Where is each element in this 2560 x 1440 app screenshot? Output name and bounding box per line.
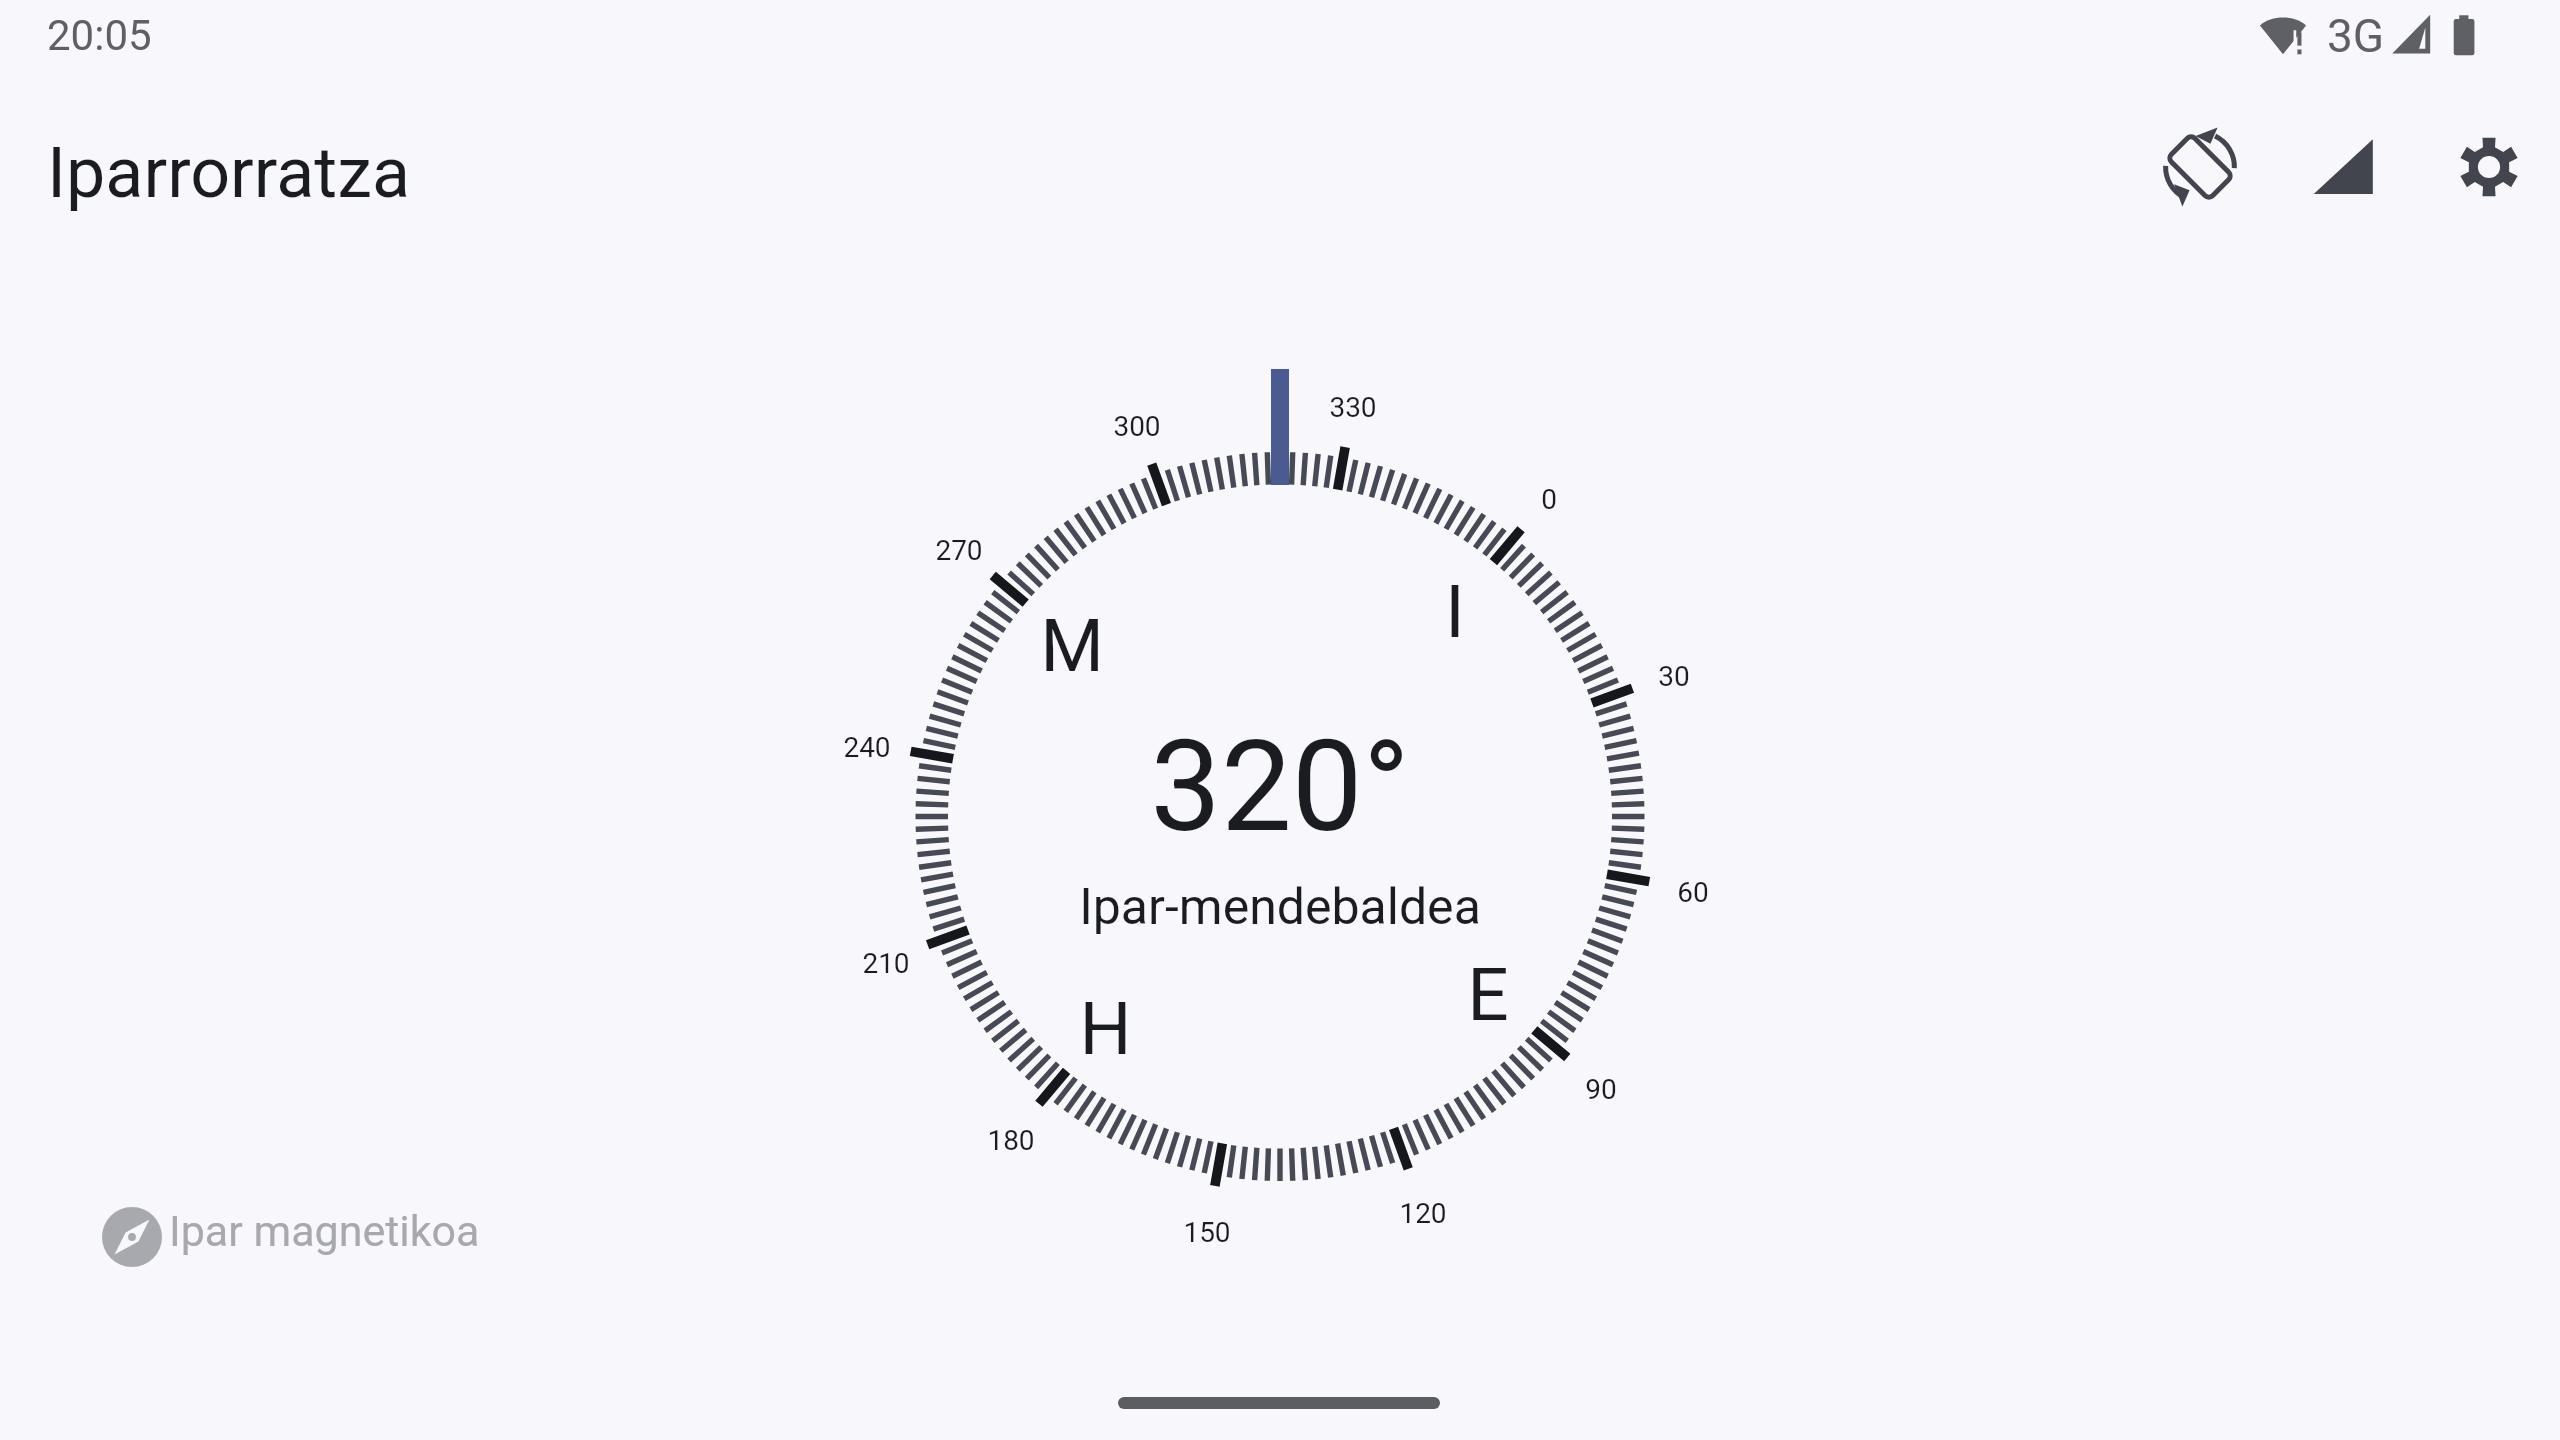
staticText: E bbox=[1467, 952, 1509, 1038]
staticText: 120 bbox=[1399, 1197, 1447, 1230]
staticText: 320° bbox=[1150, 713, 1410, 861]
staticText: 90 bbox=[1585, 1073, 1617, 1106]
staticText: 300 bbox=[1113, 410, 1161, 443]
staticText: H bbox=[1079, 986, 1132, 1072]
button[interactable]: Settings bbox=[2429, 107, 2549, 227]
staticText: 60 bbox=[1677, 876, 1709, 909]
staticText: I bbox=[1445, 569, 1465, 655]
staticText: 270 bbox=[935, 534, 983, 567]
staticText: 30 bbox=[1658, 660, 1690, 693]
other: Battery bbox=[2439, 13, 2485, 59]
other: Wi-Fi bbox=[2259, 13, 2307, 61]
staticText: 180 bbox=[987, 1124, 1035, 1157]
staticText: 0 bbox=[1541, 483, 1557, 516]
staticText: 20:05 bbox=[47, 11, 152, 60]
staticText: 3G bbox=[2327, 9, 2385, 63]
staticText: 240 bbox=[843, 731, 891, 764]
staticText: 150 bbox=[1183, 1216, 1231, 1249]
staticText: Ipar-mendebaldea bbox=[1079, 878, 1481, 937]
other: Signal bbox=[2391, 13, 2435, 57]
staticText: Ipar magnetikoa bbox=[169, 1206, 480, 1256]
button[interactable]: Rotate screen bbox=[2140, 107, 2260, 227]
staticText: Iparrorratza bbox=[47, 132, 410, 214]
button[interactable]: Sensor accuracy bbox=[2284, 108, 2404, 228]
staticText: M bbox=[1040, 603, 1104, 689]
button[interactable]: Ipar magnetikoa bbox=[90, 1193, 490, 1283]
staticText: 330 bbox=[1329, 391, 1377, 424]
staticText: 210 bbox=[862, 947, 910, 980]
